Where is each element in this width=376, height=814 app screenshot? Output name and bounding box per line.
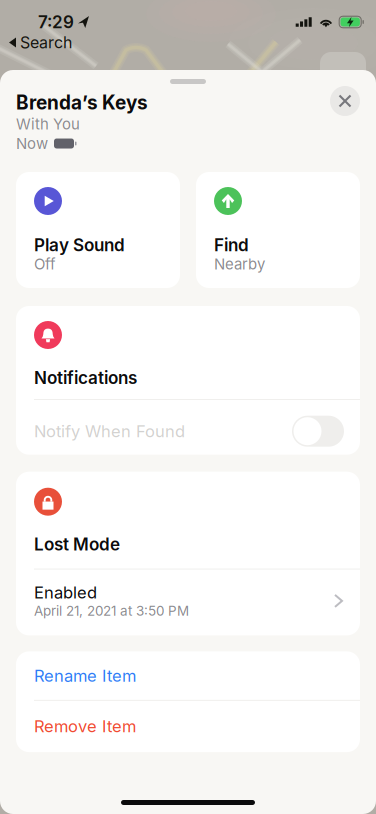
staticText: Brenda’s Keys (16, 91, 148, 114)
staticText: Lost Mode (34, 534, 120, 554)
button[interactable]: Find (196, 172, 360, 288)
staticText: 7:29 (38, 12, 74, 32)
button[interactable]: Notify When Found (16, 400, 360, 455)
staticText: Play Sound (34, 235, 125, 255)
staticText: Enabled (34, 582, 97, 602)
button[interactable]: Enabled (16, 569, 360, 635)
staticText: Rename Item (34, 666, 136, 686)
staticText: April 21, 2021 at 3:50 PM (34, 603, 189, 619)
button[interactable]: Close (330, 86, 360, 116)
staticText: Off (34, 255, 56, 273)
button[interactable]: Play Sound (16, 172, 180, 288)
staticText: Find (214, 235, 249, 255)
staticText: Remove Item (34, 716, 136, 736)
staticText: Search (20, 33, 72, 52)
staticText: Now (16, 134, 48, 153)
staticText: With You (16, 115, 80, 133)
staticText: Nearby (214, 255, 265, 273)
staticText: Notifications (34, 367, 137, 388)
button[interactable]: Remove Item (16, 701, 360, 752)
staticText: Notify When Found (34, 421, 185, 441)
button[interactable]: Rename Item (16, 651, 360, 700)
